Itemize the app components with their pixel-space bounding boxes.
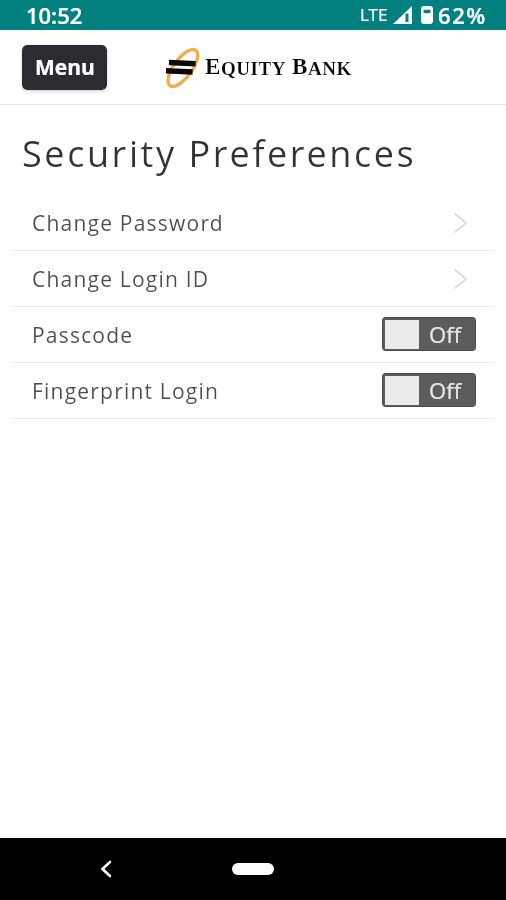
button[interactable]: Passcode (0, 307, 506, 363)
staticText: B (292, 54, 308, 79)
button[interactable]: Change Password (0, 195, 506, 251)
button[interactable]: Home (232, 863, 274, 875)
staticText: Menu (35, 53, 95, 82)
button[interactable]: Change Login ID (0, 251, 506, 307)
staticText: Passcode (32, 321, 134, 350)
button[interactable]: Fingerprint Login (0, 363, 506, 419)
staticText: 10:52 (26, 0, 83, 30)
staticText: Off (429, 319, 462, 349)
button[interactable]: Off (383, 374, 475, 406)
staticText: Change Login ID (32, 265, 210, 294)
staticText: ANK (308, 58, 352, 79)
staticText: E (205, 54, 221, 79)
staticText: 62% (438, 0, 487, 30)
staticText: Fingerprint Login (32, 377, 220, 406)
staticText: Off (429, 375, 462, 405)
button[interactable]: Menu (22, 45, 107, 90)
staticText: Security Preferences (22, 129, 417, 178)
staticText: QUITY (221, 58, 287, 79)
button[interactable]: Off (383, 318, 475, 350)
staticText: LTE (360, 3, 388, 26)
button[interactable]: Back (98, 859, 114, 879)
staticText: Change Password (32, 209, 224, 238)
